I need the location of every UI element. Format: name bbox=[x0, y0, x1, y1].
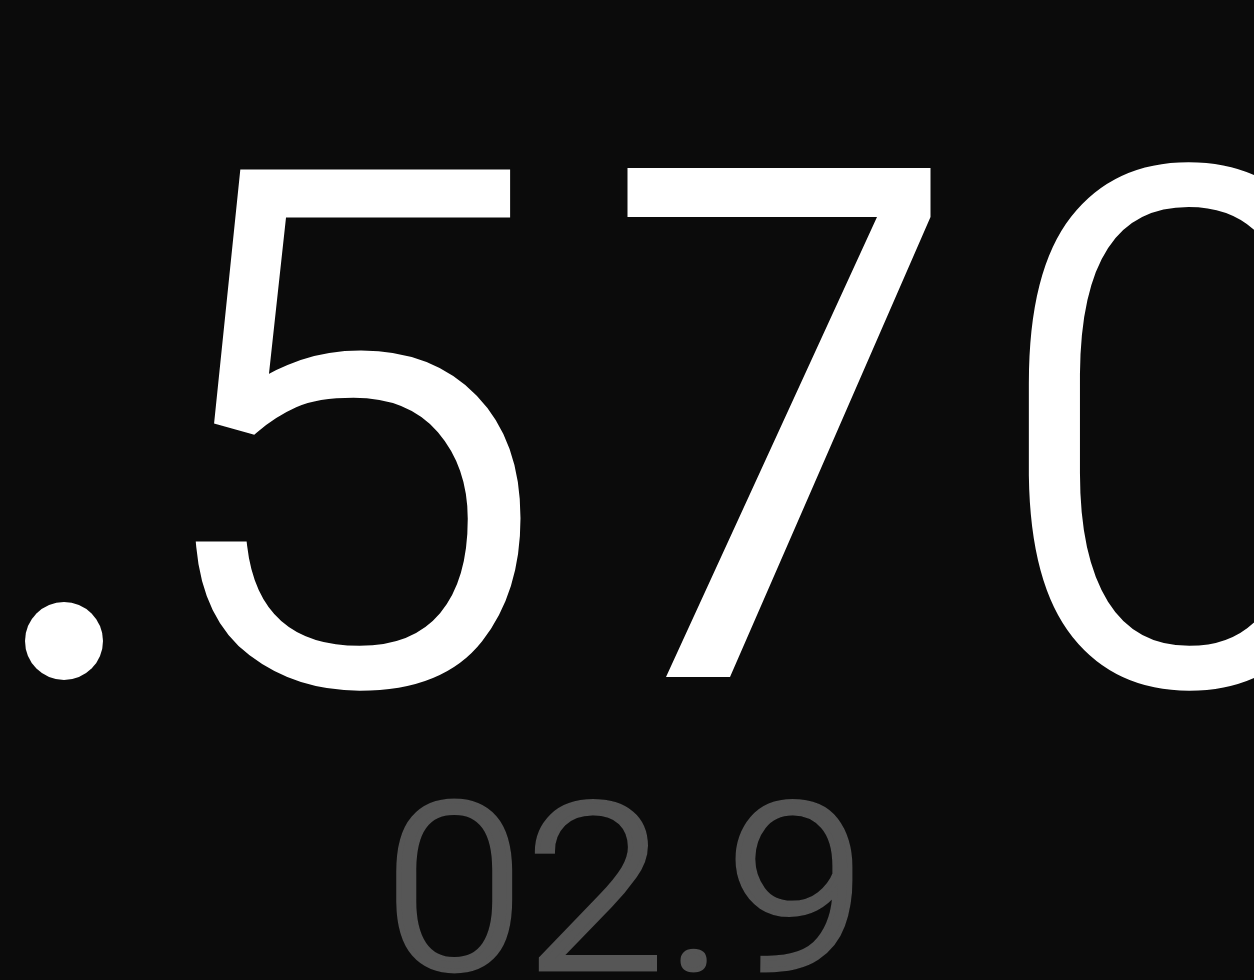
staticText: 02.9 bbox=[384, 754, 866, 980]
staticText: 5 bbox=[141, 20, 548, 852]
staticText: 5 bbox=[141, 20, 548, 852]
staticText: 0 bbox=[992, 20, 1254, 852]
staticText: 02.9 bbox=[384, 754, 866, 980]
button[interactable]: Stopwatch display, tap to start or stop bbox=[0, 0, 1254, 980]
staticText: 0 bbox=[992, 20, 1254, 852]
